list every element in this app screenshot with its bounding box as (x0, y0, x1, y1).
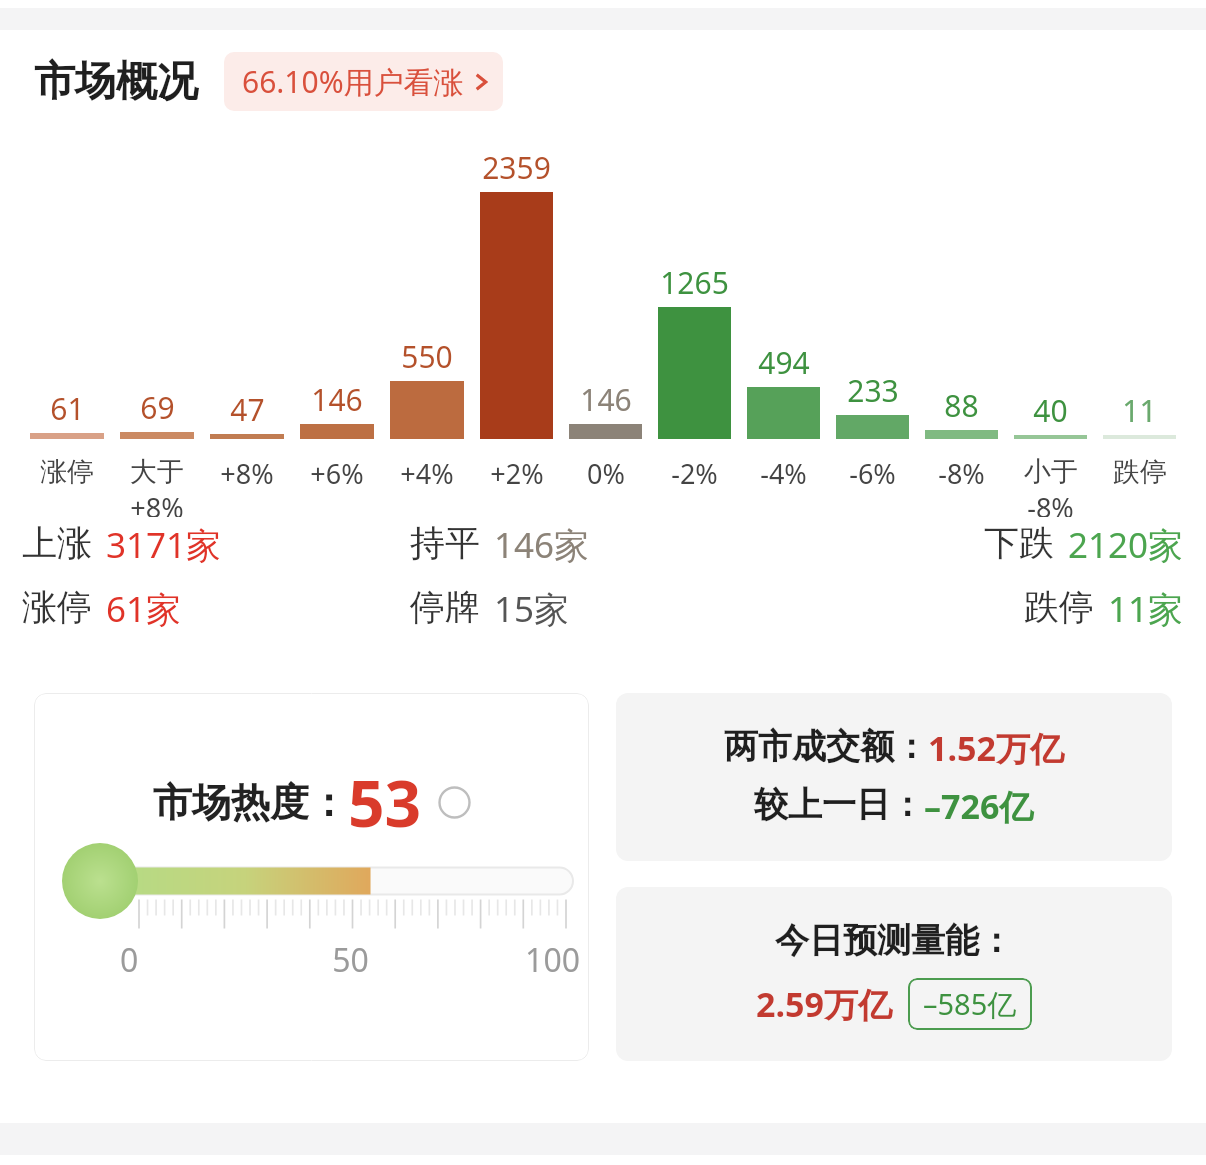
staticText: +4% (400, 455, 454, 492)
staticText: 两市成交额： (724, 725, 928, 768)
staticText: -2% (671, 455, 718, 492)
staticText: 47 (230, 389, 265, 430)
staticText: 2.59万亿 (756, 981, 892, 1027)
staticText: 233 (847, 370, 899, 411)
staticText: 69 (140, 387, 175, 428)
staticText: 11 (1122, 390, 1157, 431)
button[interactable]: 今日预测量能： (616, 887, 1172, 1061)
staticText: 53 (348, 759, 422, 846)
staticText: 40 (1033, 390, 1068, 431)
staticText: 15家 (494, 585, 570, 633)
staticText: +8% (130, 489, 184, 517)
button[interactable]: 市场热度： (34, 693, 589, 1061)
staticText: -8% (1027, 489, 1074, 517)
staticText: 3171家 (106, 521, 222, 569)
staticText: 市场概况 (34, 56, 198, 108)
staticText: 涨停 (40, 455, 94, 489)
staticText: -6% (849, 455, 896, 492)
staticText: 停牌 (410, 585, 480, 629)
button[interactable]: Help (438, 786, 471, 819)
staticText: 持平 (410, 521, 480, 565)
staticText: 146 (580, 379, 632, 420)
staticText: 550 (401, 336, 453, 377)
staticText: 市场热度： (153, 778, 348, 827)
staticText: +6% (310, 455, 364, 492)
staticText: 涨停 (22, 585, 92, 629)
staticText: 1265 (660, 262, 729, 303)
button[interactable]: 66.10%用户看涨 (224, 52, 503, 111)
staticText: 较上一日： (754, 783, 924, 826)
staticText: 大于 (130, 455, 184, 489)
staticText: 494 (758, 342, 810, 383)
staticText: 88 (944, 385, 979, 426)
staticText: –726亿 (924, 783, 1034, 829)
staticText: 1.52万亿 (928, 725, 1064, 771)
staticText: 下跌 (984, 521, 1054, 565)
staticText: 小于 (1024, 455, 1078, 489)
staticText: 今日预测量能： (775, 919, 1013, 962)
staticText: 0% (587, 455, 625, 492)
staticText: 50 (274, 938, 427, 982)
staticText: 2120家 (1068, 521, 1184, 569)
staticText: 2359 (482, 147, 551, 188)
button[interactable]: 两市成交额： (616, 693, 1172, 861)
staticText: 146 (311, 379, 363, 420)
staticText: –585亿 (923, 984, 1017, 1024)
staticText: 跌停 (1113, 455, 1167, 489)
staticText: 0 (120, 938, 274, 982)
staticText: -4% (760, 455, 807, 492)
staticText: 146家 (494, 521, 590, 569)
staticText: 66.10%用户看涨 (242, 61, 464, 102)
staticText: 11家 (1108, 585, 1184, 633)
staticText: -8% (938, 455, 985, 492)
staticText: 61 (50, 388, 85, 429)
staticText: 上涨 (22, 521, 92, 565)
staticText: 跌停 (1024, 585, 1094, 629)
staticText: +8% (220, 455, 274, 492)
staticText: 100 (427, 938, 580, 982)
staticText: 61家 (106, 585, 182, 633)
staticText: +2% (490, 455, 544, 492)
